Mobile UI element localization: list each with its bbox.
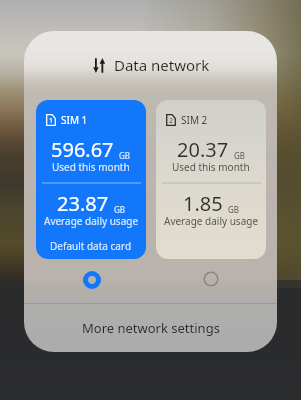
staticText: GB	[228, 204, 240, 215]
staticText: GB	[234, 150, 246, 161]
staticText: SIM 1	[61, 113, 88, 127]
button[interactable]: 2	[156, 100, 266, 259]
staticText: More network settings	[82, 319, 220, 337]
button[interactable]: 1	[36, 100, 146, 259]
staticText: 23.87	[57, 190, 109, 217]
button[interactable]: More network settings	[24, 304, 277, 352]
staticText: 596.67	[51, 136, 114, 163]
staticText: Average daily usage	[164, 214, 259, 228]
staticText: Used this month	[52, 160, 130, 174]
staticText: Data network	[114, 55, 210, 75]
staticText: Default data card	[50, 239, 132, 253]
button[interactable]: Select SIM 1	[81, 269, 103, 291]
button[interactable]: Select SIM 2	[200, 268, 222, 290]
staticText: GB	[114, 204, 126, 215]
other: Data network	[92, 58, 106, 73]
staticText: GB	[119, 150, 131, 161]
staticText: 20.37	[177, 136, 229, 163]
staticText: Used this month	[172, 160, 250, 174]
staticText: SIM 2	[181, 113, 208, 127]
staticText: 2	[169, 116, 174, 126]
staticText: 1.85	[183, 190, 223, 217]
staticText: Average daily usage	[44, 214, 139, 228]
staticText: 1	[49, 116, 54, 126]
